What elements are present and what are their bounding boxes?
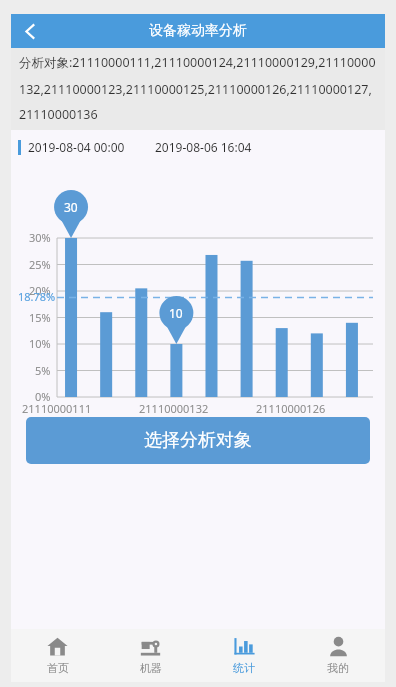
staticText: 10 xyxy=(169,305,183,321)
staticText: 18.78% xyxy=(18,289,56,304)
staticText: 2019-08-06 16:04 xyxy=(155,139,252,155)
staticText: 设备稼动率分析 xyxy=(149,22,247,40)
staticText: 选择分析对象 xyxy=(144,429,252,452)
staticText: 21110000132 xyxy=(139,401,256,416)
staticText: 分析对象:21110000111,21110000124,21110000129… xyxy=(19,54,377,122)
staticText: 2019-08-04 00:00 xyxy=(28,139,125,155)
button[interactable]: Back xyxy=(11,14,49,48)
staticText: 首页 xyxy=(47,661,69,675)
staticText: 0% xyxy=(35,389,51,404)
button[interactable]: 我的 xyxy=(291,629,385,682)
staticText: 21110000111 xyxy=(22,401,139,416)
staticText: 统计 xyxy=(233,661,255,675)
button[interactable]: 选择分析对象 xyxy=(26,417,370,464)
button[interactable]: 机器 xyxy=(104,629,197,682)
staticText: 10% xyxy=(29,336,51,351)
staticText: 21110000126 xyxy=(256,401,373,416)
staticText: 25% xyxy=(29,257,51,272)
staticText: 30 xyxy=(64,199,78,215)
staticText: 我的 xyxy=(327,661,349,675)
staticText: 30% xyxy=(29,230,51,245)
button[interactable]: 统计 xyxy=(197,629,291,682)
staticText: 机器 xyxy=(140,661,162,675)
staticText: 15% xyxy=(29,310,51,325)
staticText: 20% xyxy=(29,283,51,298)
button[interactable]: 首页 xyxy=(11,629,104,682)
staticText: 5% xyxy=(35,363,51,378)
